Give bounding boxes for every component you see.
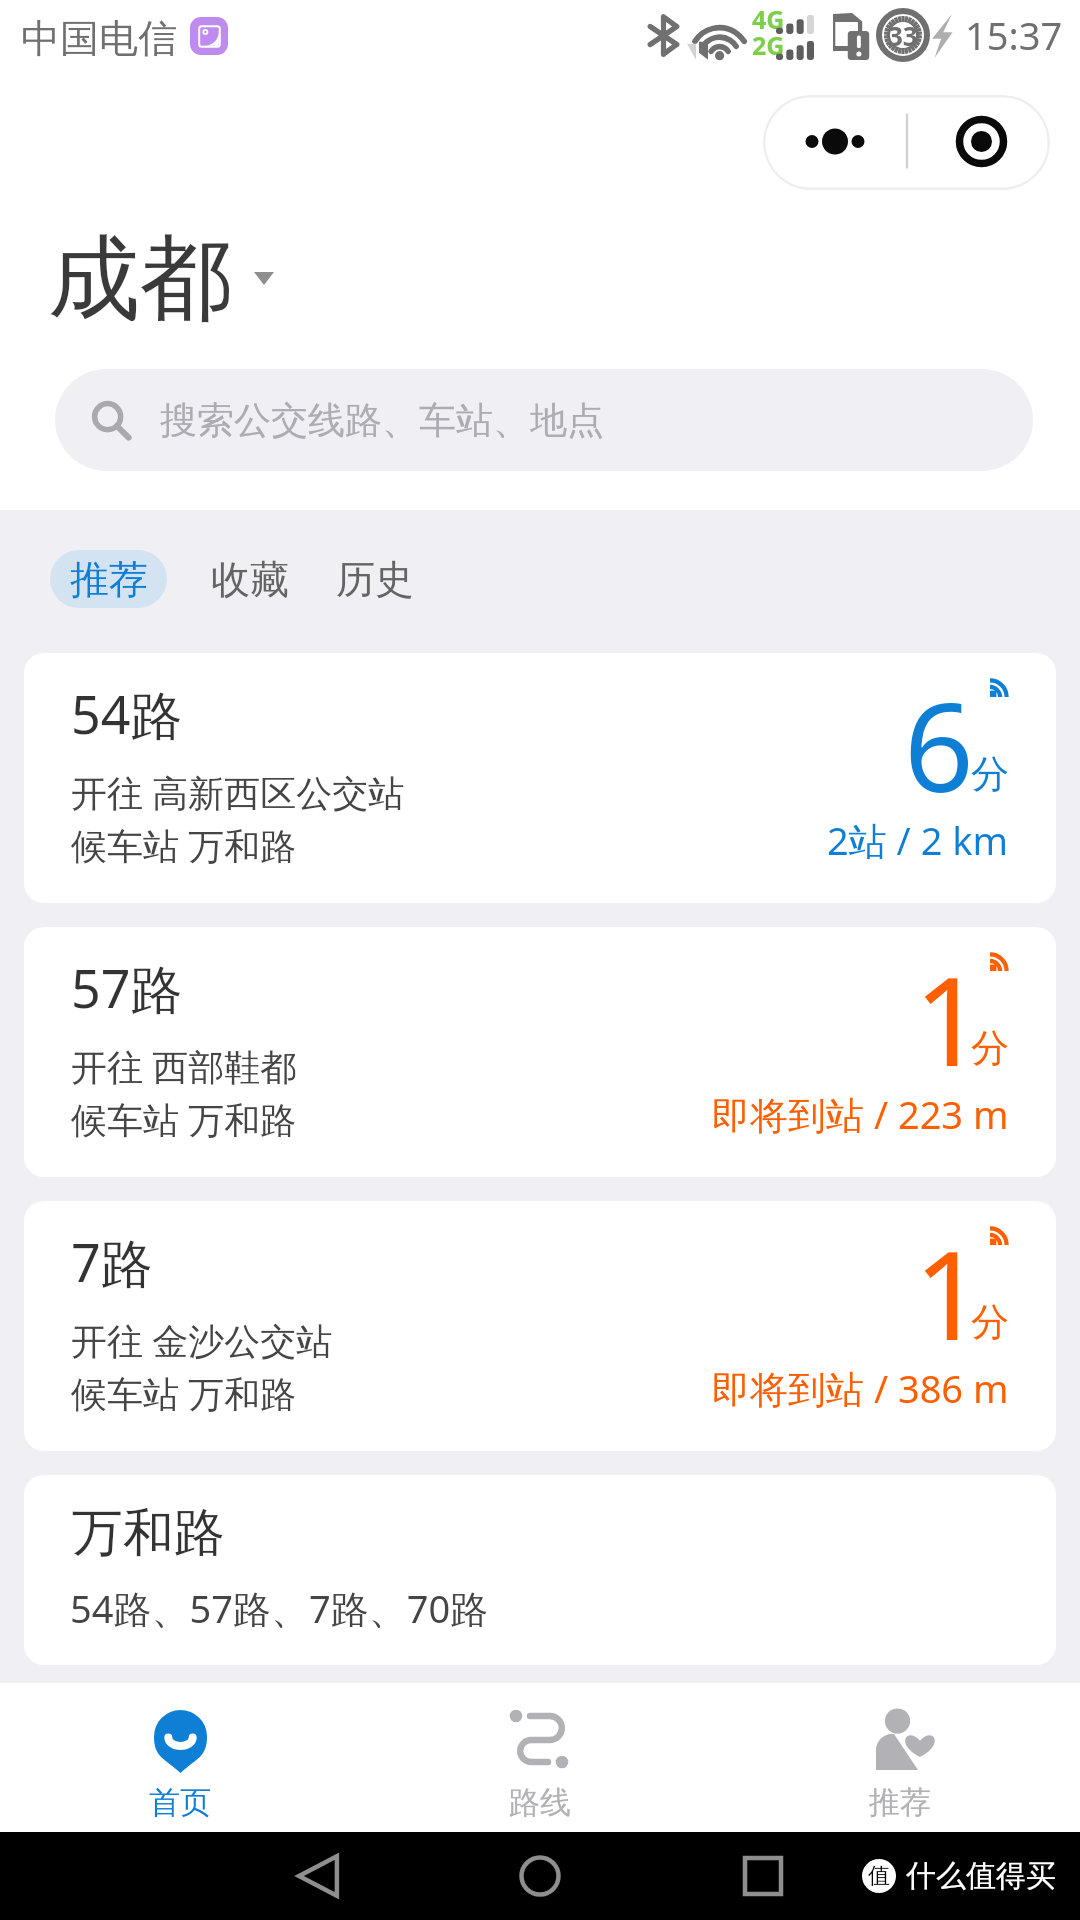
staticText: 候车站 万和路	[71, 821, 297, 870]
button[interactable]: 成都	[48, 221, 252, 337]
button[interactable]: 搜索公交线路、车站、地点	[55, 369, 1033, 471]
staticText: 即将到站 / 386 m	[712, 1362, 1009, 1414]
staticText: 57路	[71, 952, 183, 1023]
staticText: 开往 西部鞋都	[71, 1042, 297, 1091]
staticText: 路线	[509, 1783, 571, 1822]
staticText: 开往 高新西区公交站	[71, 768, 405, 817]
staticText: 推荐	[869, 1783, 931, 1822]
staticText: 7路	[71, 1226, 153, 1297]
staticText: 成都	[48, 221, 232, 337]
staticText: 15:37	[965, 9, 1063, 61]
staticText: 推荐	[70, 555, 148, 604]
staticText: 中国电信	[21, 14, 177, 63]
staticText: 2站 / 2 km	[827, 814, 1009, 866]
staticText: 候车站 万和路	[71, 1369, 297, 1418]
staticText: 6	[904, 662, 974, 828]
button[interactable]: 57路	[24, 927, 1056, 1177]
staticText: 候车站 万和路	[71, 1095, 297, 1144]
staticText: 分	[971, 1024, 1009, 1072]
button[interactable]: Menu	[763, 95, 1050, 190]
button[interactable]: 路线	[400, 1683, 680, 1832]
button[interactable]: Back	[258, 1832, 378, 1920]
button[interactable]: Recents	[703, 1832, 823, 1920]
staticText: 54路、57路、7路、70路	[70, 1582, 489, 1634]
staticText: 2G	[752, 28, 785, 62]
staticText: 1	[914, 936, 984, 1102]
button[interactable]: 历史	[330, 550, 420, 608]
staticText: 开往 金沙公交站	[71, 1316, 333, 1365]
button[interactable]: 推荐	[760, 1683, 1040, 1832]
button[interactable]: 54路	[24, 653, 1056, 903]
staticText: 即将到站 / 223 m	[712, 1088, 1009, 1140]
staticText: 1	[914, 1210, 984, 1376]
button[interactable]: 万和路	[24, 1475, 1056, 1665]
staticText: 4G	[752, 2, 785, 36]
button[interactable]: 推荐	[50, 550, 167, 608]
staticText: 54路	[71, 678, 183, 749]
button[interactable]: Home	[480, 1832, 600, 1920]
staticText: 值	[868, 1862, 890, 1890]
staticText: 什么值得买	[906, 1857, 1056, 1895]
button[interactable]: 7路	[24, 1201, 1056, 1451]
staticText: 历史	[336, 555, 414, 604]
button[interactable]: 收藏	[205, 550, 295, 608]
staticText: 分	[971, 1298, 1009, 1346]
staticText: 首页	[149, 1783, 211, 1822]
button[interactable]: 首页	[40, 1683, 320, 1832]
staticText: 搜索公交线路、车站、地点	[160, 397, 604, 444]
staticText: 分	[971, 750, 1009, 798]
staticText: 万和路	[72, 1501, 225, 1565]
staticText: 33	[888, 18, 918, 53]
staticText: 收藏	[211, 555, 289, 604]
